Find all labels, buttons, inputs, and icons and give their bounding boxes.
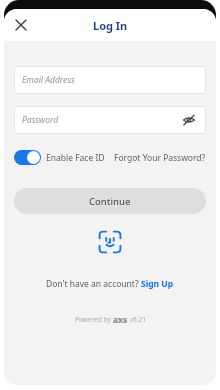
button[interactable]: Show password [180,111,198,129]
button[interactable]: Enable Face ID [14,148,105,167]
button[interactable]: Forgot Your Password? [114,149,206,167]
staticText: Enable Face ID [46,152,105,164]
staticText: Log In [93,18,128,33]
staticText: axs [113,314,128,325]
button[interactable]: Continue [14,188,206,214]
staticText: Don't have an account? [46,278,141,290]
button[interactable]: Sign Up [141,278,174,290]
button[interactable]: Close [8,12,34,38]
staticText: v6.21 [128,315,146,324]
button[interactable]: Email Address [14,66,206,94]
staticText: Continue [89,195,131,208]
staticText: Forgot Your Password? [114,152,206,164]
staticText: Powered by [75,315,113,324]
button[interactable]: Password [14,106,206,134]
staticText: Email Address [22,74,75,86]
staticText: Sign Up [141,278,174,290]
staticText: Password [22,114,59,126]
button[interactable]: Log in with Face ID [95,227,125,257]
